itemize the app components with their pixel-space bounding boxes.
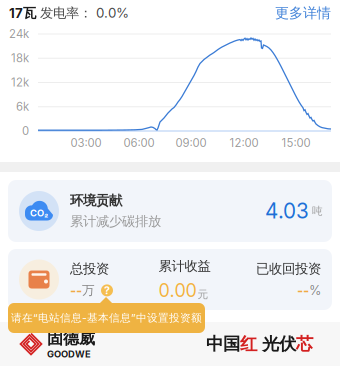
staticText: 环境贡献 bbox=[70, 192, 122, 209]
staticText: 红 bbox=[240, 333, 257, 355]
staticText: 累计收益 bbox=[158, 258, 210, 274]
staticText: 12k bbox=[11, 76, 29, 89]
staticText: 更多详情 bbox=[275, 4, 331, 22]
staticText: 光伏 bbox=[257, 333, 296, 355]
staticText: 18k bbox=[11, 51, 29, 65]
staticText: 09:00 bbox=[175, 136, 206, 150]
staticText: -- bbox=[297, 282, 309, 298]
staticText: 0.0% bbox=[92, 5, 129, 21]
staticText: 中国 bbox=[206, 333, 240, 355]
staticText: 24k bbox=[9, 27, 29, 41]
staticText: 总投资 bbox=[70, 260, 109, 277]
staticText: 元 bbox=[197, 288, 208, 301]
button[interactable]: CO₂ bbox=[8, 180, 332, 242]
staticText: 吨 bbox=[309, 204, 323, 218]
staticText: 0 bbox=[22, 124, 29, 138]
staticText: 12:00 bbox=[229, 136, 258, 150]
staticText: -- bbox=[70, 282, 82, 298]
staticText: 15:00 bbox=[281, 136, 310, 150]
staticText: 0.00 bbox=[158, 279, 196, 301]
staticText: GOODWE bbox=[47, 348, 91, 360]
staticText: 芯 bbox=[296, 333, 313, 355]
staticText: 万 bbox=[82, 282, 95, 298]
staticText: 06:00 bbox=[123, 136, 154, 150]
staticText: 4.03 bbox=[265, 198, 309, 223]
staticText: 累计减少碳排放 bbox=[70, 213, 161, 230]
staticText: 请在“电站信息-基本信息”中设置投资额 bbox=[11, 311, 202, 325]
staticText: 已收回投资 bbox=[256, 260, 321, 277]
staticText: 6k bbox=[16, 100, 29, 114]
staticText: CO₂ bbox=[30, 207, 48, 219]
staticText: 固德威 bbox=[47, 328, 95, 348]
staticText: % bbox=[309, 283, 321, 298]
button[interactable]: 总投资 bbox=[8, 249, 332, 310]
staticText: 发电率： bbox=[36, 5, 92, 21]
staticText: 03:00 bbox=[70, 136, 101, 150]
staticText: 17瓦 bbox=[9, 5, 36, 21]
staticText: ? bbox=[104, 284, 110, 297]
button[interactable]: 更多详情 bbox=[275, 4, 331, 22]
